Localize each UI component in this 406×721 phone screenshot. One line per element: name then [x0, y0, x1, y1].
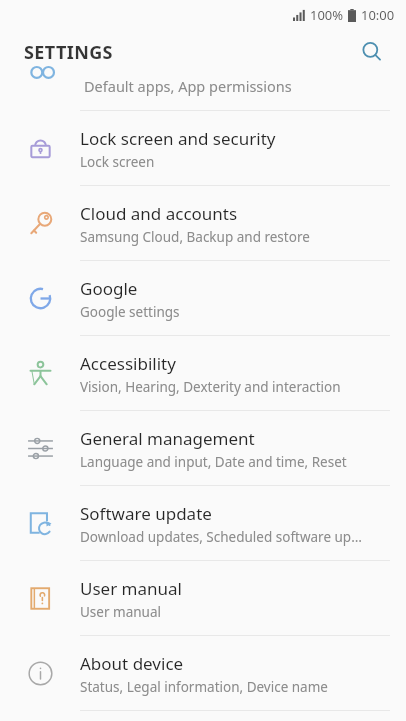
- button[interactable]: Lock screen and security: [0, 111, 406, 186]
- button[interactable]: Default apps, App permissions: [0, 74, 406, 111]
- staticText: Lock screen and security: [80, 127, 276, 150]
- staticText: Language and input, Date and time, Reset: [80, 453, 347, 471]
- button[interactable]: Accessibility: [0, 336, 406, 411]
- staticText: About device: [80, 652, 184, 675]
- button[interactable]: Software update: [0, 486, 406, 561]
- staticText: 100%: [310, 6, 344, 24]
- staticText: Accessibility: [80, 352, 176, 375]
- button[interactable]: Cloud and accounts: [0, 186, 406, 261]
- button[interactable]: User manual: [0, 561, 406, 636]
- staticText: Samsung Cloud, Backup and restore: [80, 228, 310, 246]
- staticText: Software update: [80, 502, 212, 525]
- staticText: Lock screen: [80, 153, 155, 171]
- staticText: User manual: [80, 603, 161, 621]
- staticText: Google settings: [80, 303, 180, 321]
- button[interactable]: Search: [350, 30, 394, 74]
- staticText: Cloud and accounts: [80, 202, 238, 225]
- staticText: Default apps, App permissions: [84, 76, 292, 96]
- staticText: Status, Legal information, Device name: [80, 678, 328, 696]
- button[interactable]: General management: [0, 411, 406, 486]
- button[interactable]: About device: [0, 636, 406, 711]
- button[interactable]: Google: [0, 261, 406, 336]
- staticText: SETTINGS: [24, 40, 113, 65]
- staticText: Download updates, Scheduled software up…: [80, 528, 362, 546]
- staticText: 10:00: [361, 6, 395, 24]
- staticText: User manual: [80, 577, 182, 600]
- staticText: Vision, Hearing, Dexterity and interacti…: [80, 378, 341, 396]
- staticText: Google: [80, 277, 138, 300]
- staticText: General management: [80, 427, 255, 450]
